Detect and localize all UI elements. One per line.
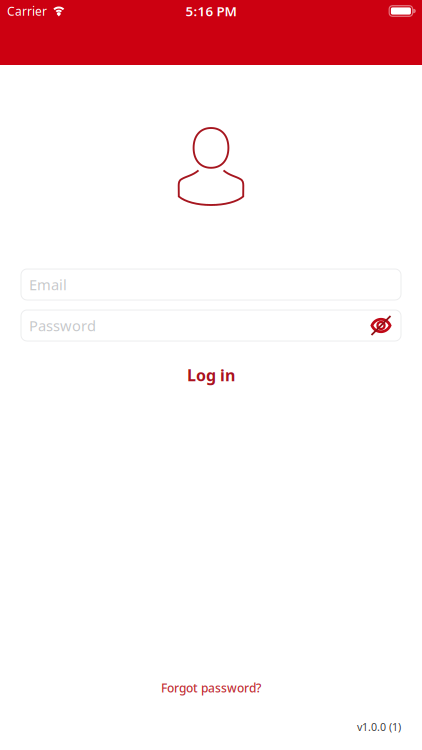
button[interactable]: Forgot password?	[0, 677, 422, 699]
staticText: Email	[29, 275, 67, 294]
button[interactable]: Password	[21, 310, 401, 341]
staticText: Forgot password?	[161, 680, 261, 696]
staticText: Log in	[187, 364, 235, 386]
staticText: 5:16 PM	[185, 2, 236, 20]
button[interactable]: Log in	[0, 361, 422, 389]
staticText: v1.0.0 (1)	[357, 720, 401, 734]
staticText: Password	[29, 316, 96, 335]
staticText: Carrier	[7, 3, 47, 19]
button[interactable]: Show password	[366, 310, 396, 340]
button[interactable]: Email	[21, 269, 401, 300]
